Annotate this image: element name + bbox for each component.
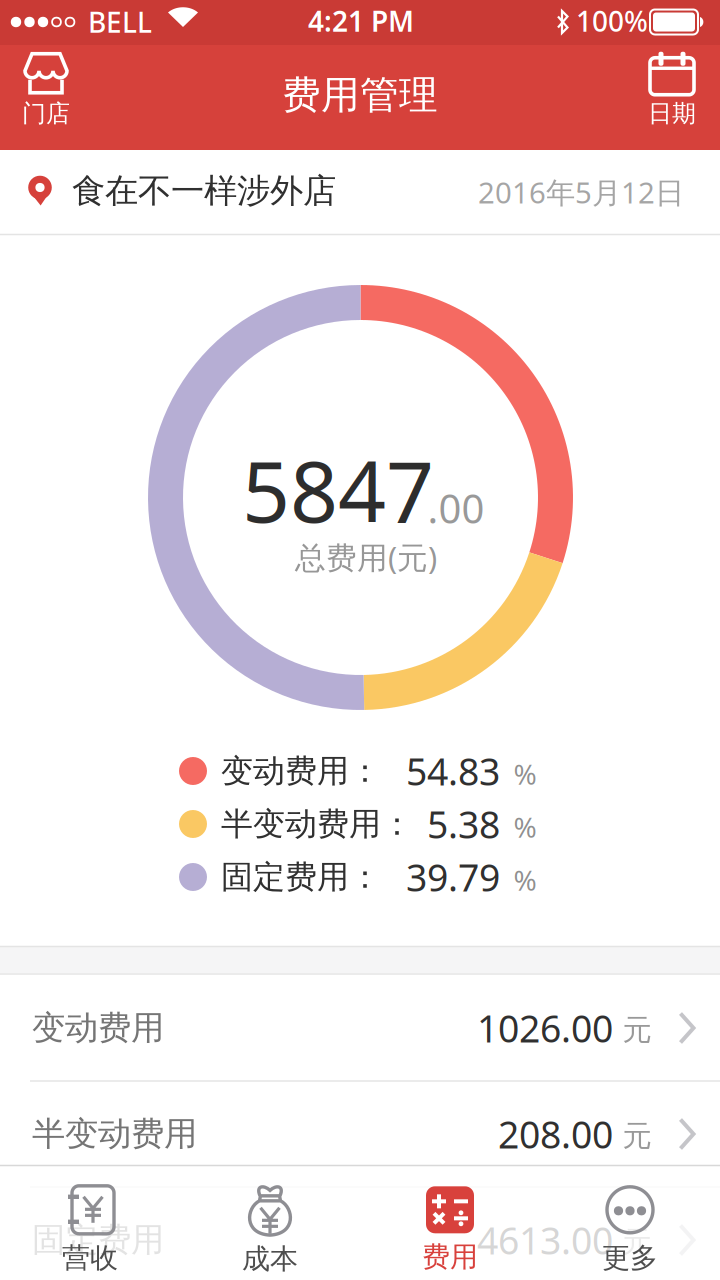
staticText: 4613.00: [477, 1215, 613, 1265]
staticText: 39.79: [406, 852, 500, 902]
staticText: 54.83: [406, 746, 500, 796]
staticText: 食在不一样涉外店: [72, 170, 336, 211]
staticText: 营收: [62, 1241, 118, 1275]
button[interactable]: 日期: [622, 44, 720, 136]
staticText: %: [513, 755, 536, 793]
staticText: 变动费用：: [221, 751, 381, 791]
button[interactable]: 更多: [545, 1175, 715, 1280]
staticText: 半变动费用：: [221, 804, 413, 844]
staticText: 元: [622, 1224, 651, 1260]
staticText: %: [513, 861, 536, 899]
staticText: 5.38: [427, 799, 500, 849]
button[interactable]: 变动费用: [0, 976, 720, 1080]
staticText: 元: [622, 1118, 651, 1154]
staticText: 208.00: [498, 1109, 613, 1159]
button[interactable]: 半变动费用: [0, 1082, 720, 1186]
staticText: 总费用(元): [295, 537, 437, 577]
staticText: BELL: [88, 3, 152, 41]
button[interactable]: 门店: [0, 44, 96, 136]
button[interactable]: 食在不一样涉外店: [0, 150, 720, 234]
staticText: 2016年5月12日: [478, 172, 684, 211]
button[interactable]: 费用: [365, 1175, 535, 1280]
staticText: 固定费用：: [221, 857, 381, 897]
staticText: 门店: [22, 99, 70, 128]
staticText: 费用管理: [282, 71, 438, 119]
staticText: 半变动费用: [32, 1113, 197, 1154]
staticText: 日期: [648, 99, 696, 128]
button[interactable]: 固定费用: [0, 1188, 720, 1280]
button[interactable]: 成本: [185, 1175, 355, 1280]
staticText: 固定费用: [32, 1219, 164, 1260]
staticText: 成本: [242, 1242, 298, 1276]
staticText: 更多: [602, 1241, 658, 1275]
staticText: .00: [427, 481, 484, 534]
staticText: 1026.00: [477, 1003, 613, 1053]
staticText: 元: [622, 1012, 651, 1048]
staticText: 费用: [422, 1240, 478, 1274]
staticText: 4:21 PM: [308, 2, 414, 40]
staticText: 100%: [576, 2, 648, 40]
staticText: %: [513, 808, 536, 846]
staticText: 5847: [242, 434, 434, 546]
staticText: 变动费用: [32, 1007, 164, 1048]
button[interactable]: 营收: [5, 1175, 175, 1280]
